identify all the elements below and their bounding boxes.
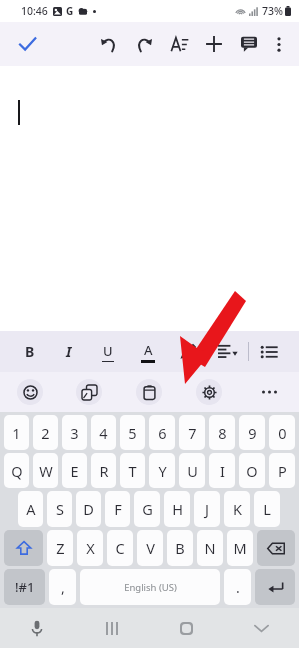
button[interactable]: More keyboard options bbox=[239, 372, 299, 412]
button[interactable]: Enter bbox=[255, 569, 295, 605]
button[interactable]: I bbox=[209, 453, 235, 488]
button[interactable]: Done bbox=[10, 27, 44, 61]
button[interactable]: More options bbox=[265, 30, 293, 58]
button[interactable]: Emoji bbox=[0, 372, 59, 412]
staticText: !#1 bbox=[15, 578, 35, 596]
button[interactable]: J bbox=[194, 491, 220, 527]
staticText: D bbox=[83, 499, 94, 519]
button[interactable]: Undo bbox=[95, 30, 123, 58]
staticText: 1 bbox=[12, 423, 21, 443]
staticText: U bbox=[103, 342, 113, 360]
button[interactable]: U bbox=[179, 453, 205, 488]
button[interactable]: 4 bbox=[91, 415, 116, 450]
button[interactable]: 2 bbox=[33, 415, 58, 450]
button[interactable]: Home bbox=[149, 608, 224, 648]
button[interactable]: Settings bbox=[179, 372, 239, 412]
staticText: X bbox=[86, 538, 95, 558]
button[interactable]: Y bbox=[149, 453, 175, 488]
staticText: P bbox=[278, 461, 287, 481]
staticText: 2 bbox=[41, 423, 50, 443]
button[interactable]: 7 bbox=[179, 415, 205, 450]
button[interactable]: H bbox=[164, 491, 190, 527]
button[interactable]: Stickers bbox=[59, 372, 119, 412]
button[interactable]: R bbox=[91, 453, 116, 488]
button[interactable]: Clipboard bbox=[119, 372, 179, 412]
button[interactable]: W bbox=[33, 453, 58, 488]
button[interactable]: K bbox=[224, 491, 250, 527]
button[interactable]: A bbox=[18, 491, 43, 527]
staticText: Y bbox=[158, 461, 167, 481]
staticText: English (US) bbox=[124, 581, 177, 594]
button[interactable]: . bbox=[224, 569, 251, 605]
button[interactable]: Bold bbox=[10, 331, 49, 372]
staticText: E bbox=[70, 461, 79, 481]
button[interactable]: Text formatting bbox=[165, 30, 193, 58]
button[interactable]: S bbox=[47, 491, 72, 527]
button[interactable]: Insert bbox=[200, 30, 228, 58]
button[interactable]: , bbox=[49, 569, 76, 605]
button[interactable]: G bbox=[134, 491, 160, 527]
staticText: M bbox=[233, 538, 247, 558]
staticText: , bbox=[61, 578, 65, 597]
button[interactable]: 1 bbox=[4, 415, 29, 450]
staticText: A bbox=[144, 341, 153, 359]
button[interactable]: B bbox=[167, 530, 193, 566]
staticText: R bbox=[99, 461, 109, 481]
button[interactable]: 8 bbox=[209, 415, 235, 450]
button[interactable]: Highlight bbox=[168, 331, 208, 372]
button[interactable]: E bbox=[62, 453, 87, 488]
button[interactable]: D bbox=[76, 491, 101, 527]
button[interactable]: Comment bbox=[235, 30, 263, 58]
button[interactable]: T bbox=[120, 453, 145, 488]
button[interactable]: Z bbox=[47, 530, 73, 566]
staticText: 5 bbox=[128, 423, 137, 443]
staticText: F bbox=[114, 499, 122, 519]
staticText: Q bbox=[11, 461, 23, 481]
staticText: B bbox=[175, 538, 185, 558]
staticText: H bbox=[172, 499, 183, 519]
staticText: B bbox=[25, 342, 35, 361]
button[interactable]: Bulleted list bbox=[249, 331, 289, 372]
button[interactable]: C bbox=[107, 530, 133, 566]
button[interactable]: Q bbox=[4, 453, 29, 488]
staticText: T bbox=[128, 461, 137, 481]
button[interactable]: 6 bbox=[149, 415, 175, 450]
staticText: W bbox=[39, 461, 53, 481]
button[interactable]: Alignment bbox=[208, 331, 248, 372]
button[interactable]: Voice input bbox=[0, 608, 74, 648]
button[interactable]: X bbox=[77, 530, 103, 566]
button[interactable]: Underline bbox=[88, 331, 128, 372]
staticText: 73% bbox=[262, 4, 283, 18]
button[interactable]: P bbox=[269, 453, 295, 488]
button[interactable]: M bbox=[227, 530, 253, 566]
staticText: I bbox=[66, 342, 72, 361]
button[interactable]: English (US) bbox=[80, 569, 220, 605]
staticText: V bbox=[146, 538, 155, 558]
button[interactable]: F bbox=[105, 491, 130, 527]
staticText: Z bbox=[56, 538, 65, 558]
button[interactable]: Hide keyboard bbox=[224, 608, 299, 648]
button[interactable]: Shift bbox=[4, 530, 43, 566]
button[interactable]: O bbox=[239, 453, 265, 488]
button[interactable]: Symbols bbox=[4, 569, 45, 605]
staticText: G bbox=[66, 4, 74, 18]
button[interactable]: Redo bbox=[130, 30, 158, 58]
button[interactable]: 9 bbox=[239, 415, 265, 450]
button[interactable]: 5 bbox=[120, 415, 145, 450]
staticText: 3 bbox=[70, 423, 79, 443]
button[interactable]: Recent apps bbox=[74, 608, 149, 648]
button[interactable]: Text color bbox=[128, 331, 168, 372]
button[interactable]: 3 bbox=[62, 415, 87, 450]
button[interactable]: Backspace bbox=[257, 530, 295, 566]
staticText: 9 bbox=[248, 423, 257, 443]
staticText: . bbox=[236, 578, 240, 597]
button[interactable]: L bbox=[254, 491, 280, 527]
button[interactable]: 0 bbox=[269, 415, 295, 450]
button[interactable]: N bbox=[197, 530, 223, 566]
staticText: 10:46 bbox=[21, 4, 48, 18]
staticText: S bbox=[56, 499, 64, 519]
button[interactable]: Italic bbox=[49, 331, 88, 372]
staticText: C bbox=[115, 538, 125, 558]
button[interactable]: V bbox=[137, 530, 163, 566]
staticText: J bbox=[205, 499, 209, 519]
